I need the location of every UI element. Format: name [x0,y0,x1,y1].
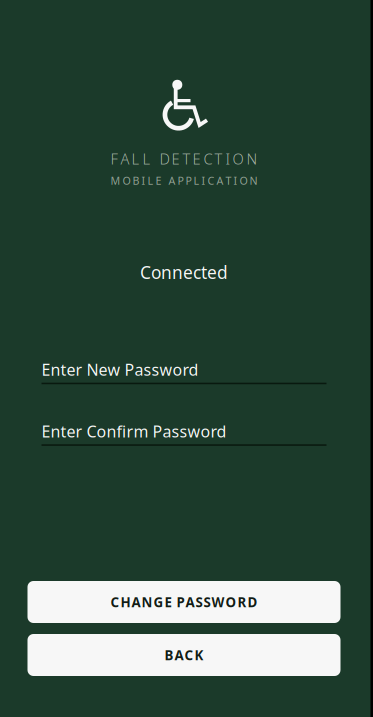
staticText: B A C K [164,646,203,664]
button[interactable]: B A C K [27,634,340,676]
staticText: Enter New Password [41,359,198,380]
button[interactable]: Enter New Password [41,361,326,384]
staticText: Enter Confirm Password [41,421,226,442]
staticText: C H A N G E P A S S W O R D [110,593,257,611]
button[interactable]: C H A N G E P A S S W O R D [27,581,340,623]
staticText: M O B I L E A P P L I C A T I O N [110,173,257,188]
staticText: Connected [140,261,228,284]
button[interactable]: Enter Confirm Password [41,422,326,446]
staticText: F A L L D E T E C T I O N [110,149,257,168]
